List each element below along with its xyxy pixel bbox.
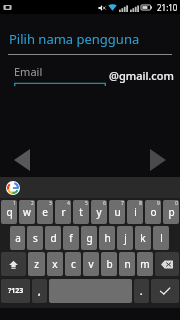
staticText: w xyxy=(23,205,31,219)
staticText: ?123 xyxy=(8,286,24,296)
button[interactable]: g xyxy=(81,226,97,250)
staticText: , xyxy=(38,285,41,297)
button[interactable]: w xyxy=(19,200,35,224)
staticText: m xyxy=(140,257,150,271)
staticText: 1 xyxy=(13,200,16,207)
button[interactable]: f xyxy=(63,226,79,250)
button[interactable]: e xyxy=(37,200,53,224)
staticText: e xyxy=(42,205,48,219)
staticText: q xyxy=(6,205,13,219)
button[interactable]: v xyxy=(83,252,99,276)
button[interactable]: , xyxy=(32,279,47,303)
button[interactable]: t xyxy=(73,200,89,224)
staticText: r xyxy=(61,205,66,219)
staticText: s xyxy=(33,231,38,245)
button[interactable]: Previous xyxy=(9,145,35,175)
button[interactable]: q xyxy=(1,200,17,224)
staticText: x xyxy=(52,257,58,271)
button[interactable]: x xyxy=(47,252,63,276)
staticText: a xyxy=(15,231,21,245)
button[interactable]: a xyxy=(10,226,25,250)
button[interactable]: l xyxy=(153,226,169,250)
button[interactable]: r xyxy=(55,200,71,224)
button[interactable]: Email xyxy=(14,64,106,86)
staticText: p xyxy=(168,205,175,219)
staticText: o xyxy=(150,205,157,219)
staticText: b xyxy=(106,257,113,271)
staticText: 7 xyxy=(121,200,124,207)
staticText: @gmail.com xyxy=(109,68,174,83)
staticText: f xyxy=(69,231,73,245)
staticText: z xyxy=(34,257,39,271)
button[interactable]: s xyxy=(27,226,43,250)
button[interactable]: z xyxy=(28,252,45,276)
staticText: h xyxy=(104,231,111,245)
staticText: Email xyxy=(14,64,43,79)
staticText: k xyxy=(140,231,146,245)
button[interactable]: y xyxy=(91,200,107,224)
button[interactable]: . xyxy=(134,279,149,303)
button[interactable]: i xyxy=(127,200,143,224)
button[interactable]: Shift xyxy=(1,252,26,276)
button[interactable]: k xyxy=(135,226,151,250)
staticText: Pilih nama pengguna xyxy=(9,30,140,48)
staticText: 4 xyxy=(67,200,70,207)
button[interactable]: Backspace xyxy=(155,252,179,276)
staticText: u xyxy=(114,205,121,219)
button[interactable]: j xyxy=(117,226,133,250)
staticText: 21:10 xyxy=(157,2,178,13)
staticText: n xyxy=(124,257,131,271)
staticText: 9 xyxy=(157,200,160,207)
button[interactable]: p xyxy=(163,200,179,224)
button[interactable]: Google search xyxy=(6,181,20,195)
staticText: 0 xyxy=(175,200,178,207)
staticText: l xyxy=(160,231,163,245)
button[interactable]: n xyxy=(119,252,135,276)
staticText: . xyxy=(140,285,143,297)
button[interactable]: o xyxy=(145,200,161,224)
button[interactable]: Next xyxy=(145,145,171,175)
staticText: g xyxy=(86,231,93,245)
button[interactable]: c xyxy=(65,252,81,276)
staticText: 6 xyxy=(103,200,106,207)
staticText: 8 xyxy=(139,200,142,207)
button[interactable]: u xyxy=(109,200,125,224)
button[interactable]: ?123 xyxy=(1,279,30,303)
staticText: v xyxy=(88,257,94,271)
button[interactable]: m xyxy=(137,252,153,276)
staticText: 2 xyxy=(31,200,34,207)
button[interactable]: Done xyxy=(151,279,179,303)
staticText: 3 xyxy=(49,200,52,207)
staticText: y xyxy=(96,205,102,219)
staticText: c xyxy=(71,257,76,271)
staticText: j xyxy=(124,231,127,245)
button[interactable]: b xyxy=(101,252,117,276)
button[interactable]: d xyxy=(45,226,61,250)
staticText: t xyxy=(79,205,83,219)
staticText: i xyxy=(134,205,137,219)
staticText: d xyxy=(50,231,57,245)
staticText: 5 xyxy=(85,200,88,207)
button[interactable]: h xyxy=(99,226,115,250)
